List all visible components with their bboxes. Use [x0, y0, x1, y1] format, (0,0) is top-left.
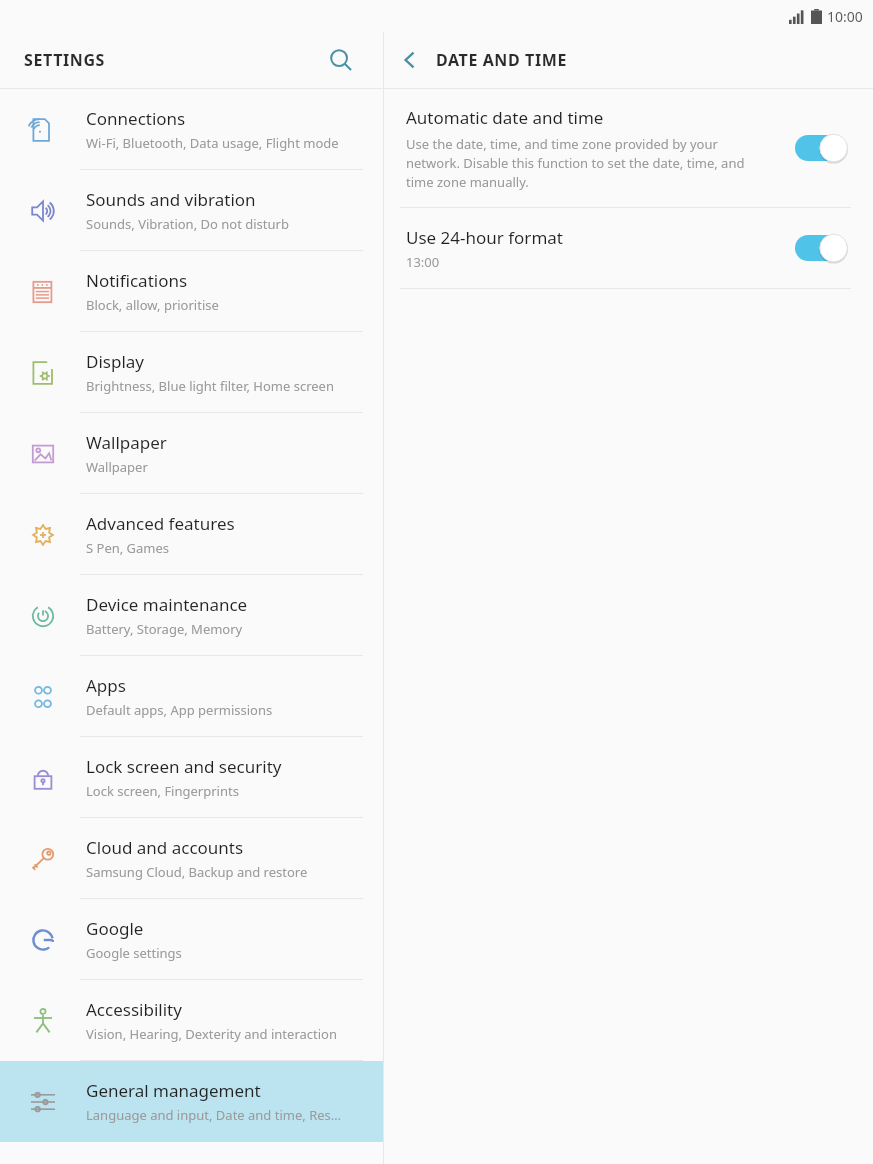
staticText: Lock screen, Fingerprints — [86, 782, 239, 800]
button[interactable]: Toggle — [795, 233, 849, 263]
button[interactable]: Search — [319, 38, 363, 82]
button[interactable]: Display — [0, 332, 383, 413]
staticText: Language and input, Date and time, Res… — [86, 1106, 342, 1124]
button[interactable]: Advanced features — [0, 494, 383, 575]
button[interactable]: Automatic date and time — [384, 89, 873, 207]
staticText: Cloud and accounts — [86, 836, 244, 859]
staticText: Use 24-hour format — [406, 226, 563, 249]
button[interactable]: Cloud and accounts — [0, 818, 383, 899]
staticText: Wallpaper — [86, 458, 148, 476]
staticText: Connections — [86, 107, 186, 130]
staticText: Default apps, App permissions — [86, 701, 273, 719]
button[interactable]: Notifications — [0, 251, 383, 332]
button[interactable]: Device maintenance — [0, 575, 383, 656]
staticText: S Pen, Games — [86, 539, 170, 557]
staticText: 10:00 — [827, 7, 863, 26]
staticText: DATE AND TIME — [436, 49, 567, 71]
button[interactable]: Accessibility — [0, 980, 383, 1061]
staticText: 13:00 — [406, 253, 440, 271]
staticText: Block, allow, prioritise — [86, 296, 219, 314]
button[interactable]: Back — [384, 34, 436, 86]
staticText: General management — [86, 1079, 261, 1102]
button[interactable]: Sounds and vibration — [0, 170, 383, 251]
staticText: Wallpaper — [86, 431, 167, 454]
staticText: Vision, Hearing, Dexterity and interacti… — [86, 1025, 337, 1043]
staticText: Sounds and vibration — [86, 188, 256, 211]
staticText: SETTINGS — [24, 49, 105, 71]
button[interactable]: Wallpaper — [0, 413, 383, 494]
button[interactable]: Toggle — [795, 133, 849, 163]
staticText: Use the date, time, and time zone provid… — [406, 135, 773, 191]
staticText: Automatic date and time — [406, 106, 604, 129]
button[interactable]: Apps — [0, 656, 383, 737]
staticText: Apps — [86, 674, 126, 697]
staticText: Device maintenance — [86, 593, 248, 616]
staticText: Battery, Storage, Memory — [86, 620, 243, 638]
staticText: Advanced features — [86, 512, 235, 535]
staticText: Google settings — [86, 944, 182, 962]
staticText: Display — [86, 350, 144, 373]
staticText: Google — [86, 917, 144, 940]
staticText: Accessibility — [86, 998, 182, 1021]
staticText: Notifications — [86, 269, 188, 292]
button[interactable]: Use 24-hour format — [384, 208, 873, 288]
staticText: Sounds, Vibration, Do not disturb — [86, 215, 289, 233]
staticText: Wi-Fi, Bluetooth, Data usage, Flight mod… — [86, 134, 339, 152]
button[interactable]: General management — [0, 1061, 383, 1142]
staticText: Lock screen and security — [86, 755, 282, 778]
staticText: Brightness, Blue light filter, Home scre… — [86, 377, 334, 395]
button[interactable]: Lock screen and security — [0, 737, 383, 818]
button[interactable]: Connections — [0, 89, 383, 170]
button[interactable]: Google — [0, 899, 383, 980]
staticText: Samsung Cloud, Backup and restore — [86, 863, 308, 881]
